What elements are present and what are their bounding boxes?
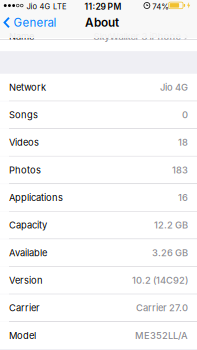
staticText: SkyWalker 3 iPhone [94, 31, 181, 42]
button[interactable]: Songs [0, 101, 197, 128]
button[interactable]: Capacity [0, 212, 197, 239]
staticText: 12.2 GB [154, 219, 188, 231]
staticText: Photos [9, 164, 41, 176]
staticText: 183 [172, 164, 188, 176]
staticText: About [85, 15, 119, 30]
staticText: Jio 4G [27, 2, 51, 11]
staticText: Carrier [9, 302, 40, 314]
button[interactable]: Available [0, 239, 197, 266]
staticText: Songs [9, 109, 38, 120]
button[interactable]: Network [0, 74, 197, 101]
button[interactable]: Photos [0, 156, 197, 183]
staticText: Capacity [9, 219, 47, 231]
staticText: ME352LL/A [135, 330, 188, 341]
staticText: LTE [53, 2, 67, 11]
button[interactable]: About [85, 11, 119, 34]
staticText: 10.2 (14C92) [132, 275, 188, 286]
staticText: Model [9, 330, 36, 341]
staticText: 0 [182, 109, 188, 120]
staticText: Version [9, 275, 43, 286]
button[interactable]: Name [0, 23, 197, 50]
staticText: 16 [178, 192, 188, 203]
staticText: Available [9, 247, 47, 258]
staticText: General [13, 16, 56, 29]
button[interactable]: Applications [0, 184, 197, 211]
button[interactable]: General [0, 11, 61, 34]
staticText: Applications [9, 192, 63, 203]
button[interactable]: Videos [0, 129, 197, 156]
staticText: Videos [9, 137, 39, 148]
button[interactable]: Model [0, 322, 197, 349]
staticText: Network [9, 82, 46, 93]
staticText: 3.26 GB [152, 247, 188, 258]
staticText: Carrier 27.0 [136, 302, 188, 314]
staticText: 11:29 PM [85, 2, 122, 12]
button[interactable]: Carrier [0, 294, 197, 321]
staticText: Jio 4G [160, 82, 188, 93]
staticText: 18 [178, 137, 188, 148]
staticText: Name [9, 31, 34, 42]
button[interactable]: Version [0, 267, 197, 294]
staticText: 74% [152, 2, 169, 11]
